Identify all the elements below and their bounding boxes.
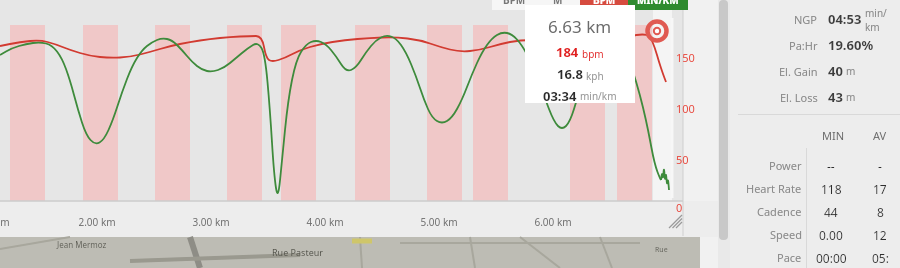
staticText: Heart Rate xyxy=(746,181,802,196)
staticText: m xyxy=(846,64,856,78)
staticText: 100 xyxy=(676,101,695,116)
staticText: Pa:Hr xyxy=(789,38,818,53)
staticText: 0 xyxy=(676,200,683,215)
staticText: - xyxy=(878,158,882,174)
staticText: 118 xyxy=(821,181,842,197)
staticText: 3.00 km xyxy=(192,215,230,229)
staticText: MIN xyxy=(822,128,845,143)
staticText: MIN/KM xyxy=(637,0,679,7)
staticText: 6.63 km xyxy=(548,15,612,38)
staticText: min/km xyxy=(580,89,617,103)
staticText: Power xyxy=(769,158,802,173)
staticText: El. Gain xyxy=(779,64,818,79)
staticText: 6.00 km xyxy=(534,215,572,229)
staticText: Speed xyxy=(770,227,802,242)
staticText: -- xyxy=(827,158,835,174)
staticText: 40 xyxy=(828,62,843,80)
staticText: 03:34 xyxy=(543,87,577,103)
staticText: 00:00 xyxy=(816,250,847,266)
staticText: bpm xyxy=(582,47,604,61)
staticText: 12 xyxy=(873,227,887,243)
staticText: 19.60% xyxy=(828,36,874,54)
staticText: 17 xyxy=(873,181,887,197)
staticText: NGP xyxy=(794,12,818,27)
button[interactable]: Pace xyxy=(730,246,900,268)
staticText: kph xyxy=(586,69,604,83)
button[interactable]: Pa:Hr xyxy=(730,32,900,58)
staticText: Rue Pasteur xyxy=(272,246,323,258)
staticText: Rue xyxy=(655,245,668,255)
staticText: 5.00 km xyxy=(420,215,458,229)
button[interactable]: MIN/KM xyxy=(628,0,688,10)
staticText: 184 xyxy=(556,43,579,61)
button[interactable]: BPM xyxy=(492,0,536,10)
staticText: AV xyxy=(873,128,887,143)
staticText: 150 xyxy=(676,50,695,65)
button[interactable]: M xyxy=(536,0,580,10)
staticText: 04:53 xyxy=(828,10,862,28)
button[interactable]: Heart Rate xyxy=(730,177,900,200)
staticText: 44 xyxy=(824,204,838,220)
staticText: 4.00 km xyxy=(306,215,344,229)
staticText: 0.00 xyxy=(819,227,843,243)
staticText: BPM xyxy=(593,0,616,7)
staticText: 8 xyxy=(877,204,884,220)
button[interactable]: El. Gain xyxy=(730,58,900,84)
staticText: M xyxy=(553,0,563,7)
staticText: 43 xyxy=(828,88,843,106)
staticText: m xyxy=(846,90,856,104)
staticText: BPM xyxy=(503,0,526,7)
button[interactable]: Power xyxy=(730,154,900,177)
staticText: 2.00 km xyxy=(78,215,116,229)
staticText: El. Loss xyxy=(780,90,818,105)
staticText: Pace xyxy=(777,250,802,265)
button[interactable]: Cadence xyxy=(730,200,900,223)
button[interactable]: BPM xyxy=(580,0,628,10)
staticText: Jean Mermoz xyxy=(57,239,107,250)
staticText: 50 xyxy=(676,152,689,167)
staticText: 05: xyxy=(872,250,889,266)
button[interactable]: NGP xyxy=(730,6,900,32)
staticText: 16.8 xyxy=(557,65,583,83)
button[interactable]: Speed xyxy=(730,223,900,246)
staticText: min/km xyxy=(865,6,900,32)
button[interactable]: El. Loss xyxy=(730,84,900,110)
staticText: m xyxy=(0,215,10,229)
staticText: Cadence xyxy=(757,204,802,219)
